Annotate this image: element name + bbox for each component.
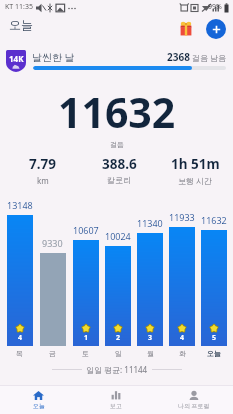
staticText: 일일 평균: 11144 <box>86 364 148 375</box>
staticText: 오늘 <box>33 402 45 410</box>
button[interactable]: 13148 <box>3 200 36 360</box>
staticText: 7.79 <box>29 155 56 173</box>
button[interactable]: 11632 <box>198 200 230 360</box>
staticText: 토 <box>82 349 89 358</box>
staticText: 11632 <box>58 84 176 140</box>
staticText: 4 <box>180 333 185 343</box>
staticText: 11933 <box>169 211 195 223</box>
button[interactable]: 11933 <box>166 200 198 360</box>
staticText: 걸음 <box>110 140 124 149</box>
button[interactable]: Rewards <box>175 18 197 40</box>
staticText: 걸음 남음 <box>192 52 227 63</box>
staticText: 10607 <box>73 224 99 236</box>
button[interactable]: 보고 <box>77 386 155 414</box>
staticText: 오늘 <box>9 17 33 32</box>
button[interactable]: 오늘 <box>0 386 77 414</box>
staticText: 보행 시간 <box>178 175 213 186</box>
button[interactable]: 10607 <box>69 200 102 360</box>
staticText: 화 <box>179 349 186 358</box>
staticText: 5 <box>212 333 217 343</box>
staticText: 1 <box>84 333 89 343</box>
staticText: 오늘 <box>207 349 221 358</box>
staticText: 2368 <box>167 50 190 64</box>
staticText: 금 <box>49 349 56 358</box>
staticText: 388.6 <box>102 155 137 173</box>
staticText: 일 <box>115 349 122 358</box>
button[interactable]: 나의 프로필 <box>155 386 233 414</box>
staticText: 4 <box>18 333 23 343</box>
staticText: 날씬한 날 <box>32 50 75 64</box>
staticText: 칼로리 <box>107 175 131 185</box>
staticText: 목 <box>16 349 23 358</box>
staticText: 99% <box>208 2 222 12</box>
button[interactable]: 9330 <box>36 200 69 360</box>
staticText: 1h 51m <box>171 155 220 173</box>
staticText: 3 <box>148 333 153 343</box>
staticText: 11340 <box>137 217 163 229</box>
button[interactable]: 11340 <box>134 200 166 360</box>
staticText: 나의 프로필 <box>178 402 210 410</box>
staticText: KT 11:35 <box>5 2 33 12</box>
staticText: 보고 <box>110 402 122 410</box>
button[interactable]: Add <box>206 19 226 39</box>
staticText: 13148 <box>7 199 33 211</box>
staticText: 2 <box>116 333 121 343</box>
staticText: 10024 <box>105 230 131 242</box>
staticText: 14K <box>9 53 24 64</box>
button[interactable]: 10024 <box>102 200 134 360</box>
staticText: km <box>37 175 49 186</box>
staticText: 월 <box>147 349 154 358</box>
staticText: 9330 <box>42 237 63 249</box>
staticText: 11632 <box>201 214 227 226</box>
